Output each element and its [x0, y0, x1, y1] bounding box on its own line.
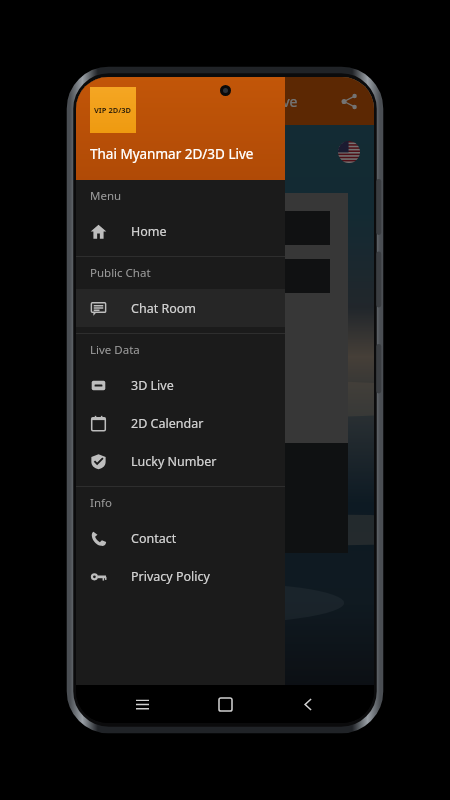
button[interactable]: Home: [76, 212, 285, 250]
staticText: Register: [162, 473, 209, 489]
staticText: Public Chat: [90, 265, 151, 281]
button[interactable]: Login: [120, 336, 250, 376]
button[interactable]: Back: [291, 687, 325, 721]
button[interactable]: Privacy Policy: [76, 557, 285, 595]
staticText: Thai Myanmar 2D/3D Live: [90, 145, 254, 163]
staticText: Info: [90, 495, 112, 511]
button[interactable]: 3D Live: [76, 366, 285, 404]
button[interactable]: Language: [338, 141, 360, 163]
staticText: Lucky Number: [131, 453, 217, 470]
staticText: Forgot password: [120, 307, 207, 322]
button[interactable]: Chat Room: [76, 289, 285, 327]
button[interactable]: Lucky Number: [76, 442, 285, 480]
staticText: Thai Myanmar 2D/3D Live: [128, 92, 298, 111]
button[interactable]: Home: [208, 687, 242, 721]
staticText: Contact: [131, 530, 177, 547]
button[interactable]: 2D Calendar: [76, 404, 285, 442]
staticText: Chat Room: [131, 300, 196, 317]
staticText: Live Data: [90, 342, 140, 358]
button[interactable]: Share: [336, 88, 362, 114]
button[interactable]: Recent apps: [125, 687, 159, 721]
staticText: Privacy Policy: [131, 568, 210, 585]
button[interactable]: Register: [120, 461, 250, 501]
staticText: VIP 2D/3D: [94, 105, 132, 115]
staticText: Menu: [90, 188, 122, 204]
staticText: 3D Live: [131, 377, 174, 394]
staticText: Home: [131, 223, 167, 240]
staticText: 2D Calendar: [131, 415, 204, 432]
button[interactable]: Contact: [76, 519, 285, 557]
